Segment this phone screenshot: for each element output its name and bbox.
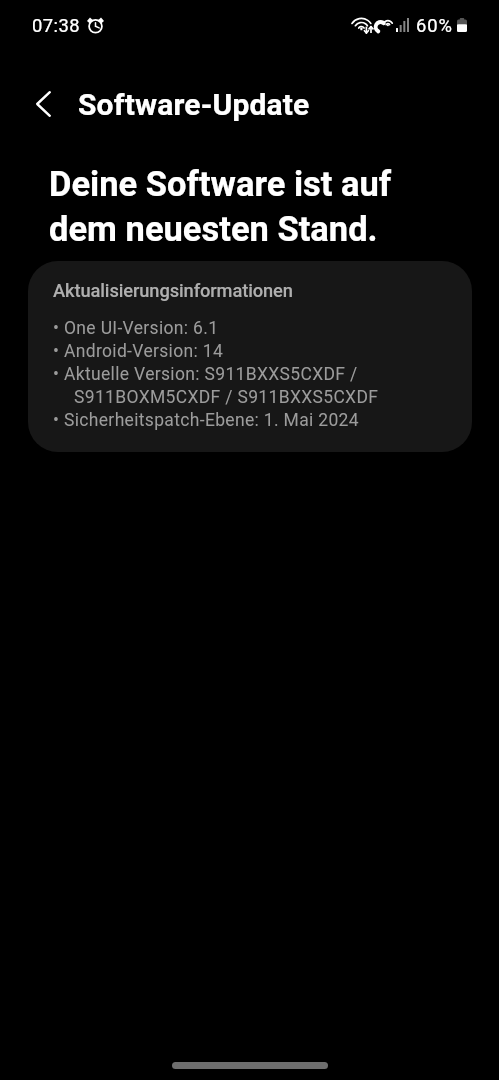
staticText: Deine Software ist auf dem neuesten Stan…: [49, 160, 392, 250]
staticText: Aktuelle Version: S911BXXS5CXDF /: [64, 362, 358, 384]
staticText: Software-Update: [78, 87, 310, 122]
staticText: •: [53, 362, 60, 384]
staticText: Aktualisierungsinformationen: [53, 280, 293, 301]
staticText: S911BOXM5CXDF / S911BXXS5CXDF: [74, 385, 379, 407]
staticText: Android-Version: 14: [64, 339, 224, 361]
button[interactable]: Aktualisierungsinformationen: [28, 261, 472, 452]
staticText: •: [53, 408, 60, 430]
staticText: •: [53, 339, 60, 361]
staticText: 07:38: [32, 15, 81, 37]
staticText: 60%: [416, 15, 453, 37]
staticText: Sicherheitspatch-Ebene: 1. Mai 2024: [64, 408, 359, 430]
button[interactable]: Zurück: [19, 80, 67, 128]
staticText: •: [53, 316, 60, 338]
staticText: One UI-Version: 6.1: [64, 316, 219, 338]
